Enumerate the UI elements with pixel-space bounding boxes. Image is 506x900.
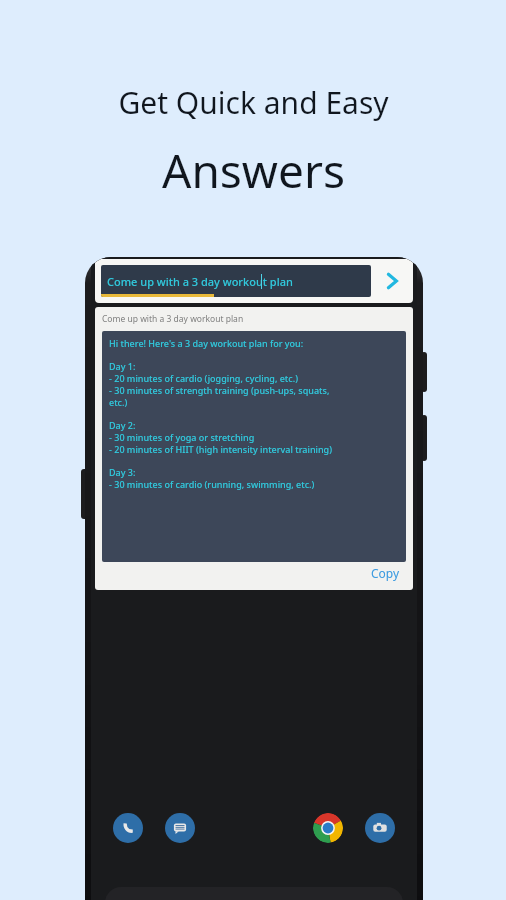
button[interactable]: Camera <box>365 813 395 843</box>
staticText: - 20 minutes of HIIT (high intensity int… <box>109 443 333 455</box>
staticText: Day 1: <box>109 360 136 372</box>
staticText: Copy <box>371 565 400 581</box>
button[interactable]: Come up with a 3 day workout plan <box>95 307 413 590</box>
staticText: Answers <box>162 139 345 202</box>
button[interactable]: Submit <box>377 266 407 296</box>
button[interactable]: Messages <box>165 813 195 843</box>
staticText: Come up with a 3 day workout plan <box>107 274 293 289</box>
button[interactable]: Come up with a 3 day workout plan <box>95 259 413 303</box>
staticText: - 30 minutes of strength training (push-… <box>109 384 330 396</box>
staticText: Day 3: <box>109 466 136 478</box>
button[interactable]: Come up with a 3 day workout plan <box>101 265 371 297</box>
staticText: Day 2: <box>109 419 136 431</box>
staticText: - 30 minutes of yoga or stretching <box>109 431 255 443</box>
staticText: Hi there! Here's a 3 day workout plan fo… <box>109 337 304 349</box>
button[interactable]: Phone <box>113 813 143 843</box>
staticText: Get Quick and Easy <box>118 82 389 123</box>
button[interactable]: Copy <box>365 563 406 583</box>
staticText: Come up with a 3 day workout plan <box>102 313 244 325</box>
staticText: etc.) <box>109 396 128 408</box>
staticText: - 20 minutes of cardio (jogging, cycling… <box>109 372 298 384</box>
button[interactable]: Chrome <box>313 813 343 843</box>
staticText: - 30 minutes of cardio (running, swimmin… <box>109 478 315 490</box>
